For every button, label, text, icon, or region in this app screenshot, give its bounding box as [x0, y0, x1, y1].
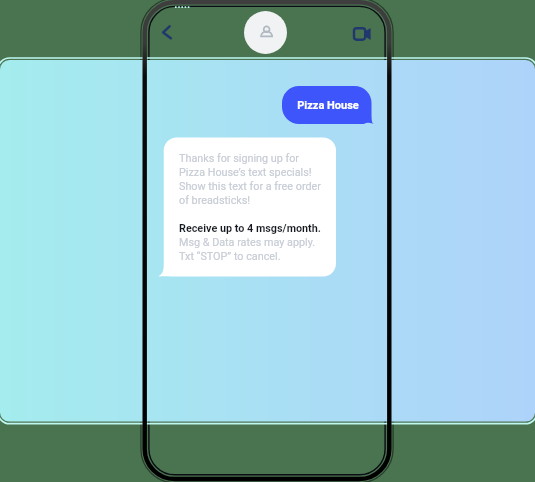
- button[interactable]: Contact profile: [244, 11, 287, 54]
- button[interactable]: Video call: [348, 22, 372, 46]
- staticText: Pizza House: [297, 99, 359, 112]
- button[interactable]: Pizza House: [282, 86, 373, 124]
- staticText: Thanks for signing up for Pizza House’s …: [179, 152, 321, 263]
- button[interactable]: Thanks for signing up for Pizza House’s …: [158, 137, 336, 277]
- button[interactable]: Back: [157, 19, 183, 45]
